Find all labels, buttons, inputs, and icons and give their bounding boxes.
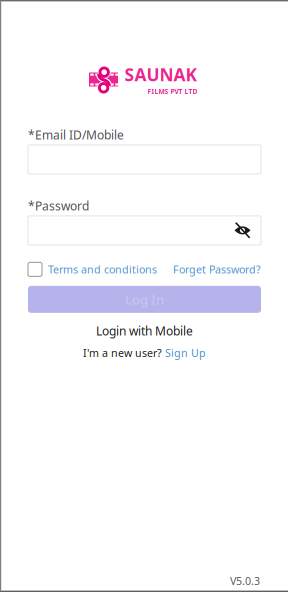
button[interactable]: Login with Mobile xyxy=(28,323,261,339)
staticText: *Email ID/Mobile xyxy=(28,127,124,143)
staticText: FILMS PVT LTD xyxy=(147,87,197,96)
button[interactable]: Terms and conditions xyxy=(28,262,157,276)
button[interactable]: Forget Password? xyxy=(173,262,261,276)
staticText: Forget Password? xyxy=(173,262,261,276)
staticText: Log In xyxy=(125,290,164,308)
button[interactable]: Log In xyxy=(28,286,261,313)
button[interactable]: Password field xyxy=(28,216,261,245)
staticText: Sign Up xyxy=(165,346,206,360)
staticText: Terms and conditions xyxy=(48,262,157,276)
staticText: V5.0.3 xyxy=(230,574,260,588)
staticText: Login with Mobile xyxy=(96,323,193,339)
staticText: I'm a new user? xyxy=(83,346,165,360)
button[interactable]: Email ID or Mobile field xyxy=(28,145,261,174)
staticText: *Password xyxy=(28,198,89,214)
staticText: SAUNAK xyxy=(124,63,197,86)
button[interactable]: Show password xyxy=(234,223,261,238)
button[interactable]: Sign Up xyxy=(165,346,206,360)
